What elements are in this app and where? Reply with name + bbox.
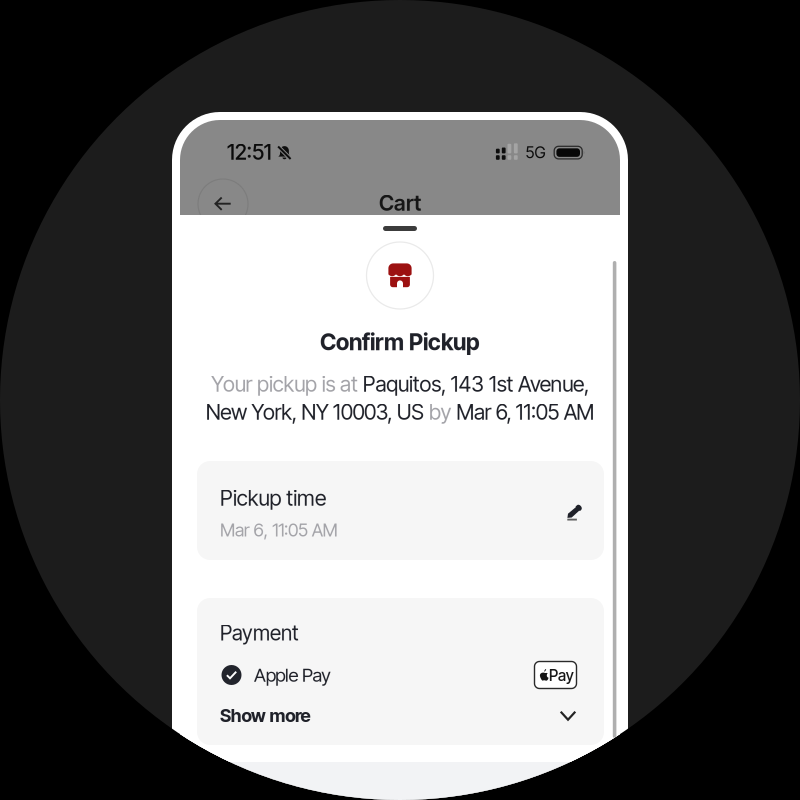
- staticText: by: [429, 399, 456, 425]
- staticText: Paquitos, 143 1st Avenue,: [363, 371, 589, 397]
- staticText: Your pickup is at: [211, 371, 363, 397]
- staticText: Pickup time: [220, 485, 326, 511]
- staticText: 5G: [526, 143, 546, 162]
- button[interactable]: Pickup time: [197, 461, 604, 560]
- staticText: Mar 6, 11:05 AM: [220, 519, 338, 541]
- button[interactable]: Apple Pay: [220, 661, 581, 689]
- staticText: Pay: [549, 666, 574, 685]
- staticText: 12:51: [227, 139, 272, 165]
- button[interactable]: Show more: [220, 704, 581, 726]
- staticText: Apple Pay: [254, 664, 331, 686]
- button[interactable]: Back: [198, 179, 248, 229]
- staticText: Cart: [379, 190, 421, 216]
- staticText: Payment: [220, 620, 299, 645]
- staticText: Confirm Pickup: [320, 328, 480, 356]
- staticText: Show more: [220, 705, 311, 726]
- staticText: Mar 6, 11:05 AM: [456, 399, 594, 425]
- staticText: New York, NY 10003, US: [206, 399, 429, 425]
